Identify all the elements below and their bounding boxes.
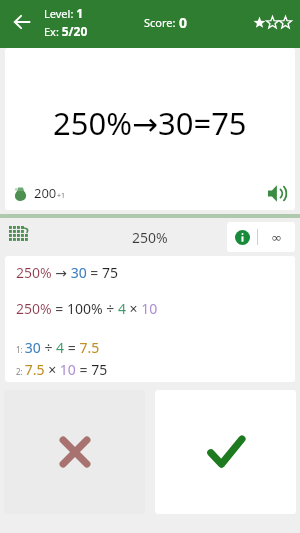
button[interactable]: Play sound bbox=[263, 180, 289, 206]
staticText: Level: 1 bbox=[44, 5, 84, 21]
staticText: 250% bbox=[132, 228, 168, 247]
staticText: 200 bbox=[34, 184, 57, 202]
button[interactable]: Grid bbox=[5, 222, 35, 252]
button[interactable]: Unlimited bbox=[258, 222, 295, 252]
staticText: 250%→30=75 bbox=[53, 102, 247, 144]
staticText: 250% = 100% ÷ 4 × 10 bbox=[16, 299, 158, 318]
staticText: 250% → 30 = 75 bbox=[16, 263, 118, 282]
button[interactable]: 250% → 30 = 75 bbox=[5, 256, 295, 382]
button[interactable]: Stars rating bbox=[253, 16, 292, 29]
button[interactable]: Correct bbox=[155, 390, 296, 514]
staticText: 1: 30 ÷ 4 = 7.5 bbox=[16, 338, 100, 357]
button[interactable]: Info bbox=[227, 222, 257, 252]
staticText: +1 bbox=[57, 191, 66, 201]
staticText: 0 bbox=[179, 13, 188, 32]
button[interactable]: Back bbox=[6, 6, 38, 38]
staticText: Ex: 5/20 bbox=[44, 23, 88, 39]
staticText: 2: 7.5 × 10 = 75 bbox=[16, 360, 108, 379]
button[interactable]: 250%→30=75 bbox=[5, 48, 295, 210]
button[interactable]: Wrong bbox=[4, 390, 145, 514]
staticText: Score: bbox=[144, 15, 179, 30]
staticText: ∞ bbox=[271, 230, 282, 245]
